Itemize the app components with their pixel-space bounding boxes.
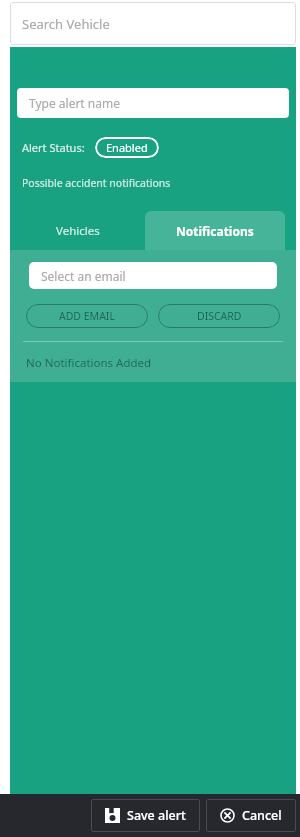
staticText: Select an email xyxy=(41,268,126,284)
button[interactable]: Enabled xyxy=(95,137,159,158)
button[interactable]: Select an email xyxy=(29,262,277,289)
button[interactable]: ADD EMAIL xyxy=(26,304,148,328)
staticText: Enabled xyxy=(106,140,148,155)
button[interactable]: Cancel xyxy=(206,799,296,832)
button[interactable]: Search Vehicle xyxy=(10,2,296,45)
button[interactable]: DISCARD xyxy=(158,304,280,328)
other: Cancel xyxy=(220,808,235,823)
staticText: Cancel xyxy=(242,807,282,824)
staticText: Save alert xyxy=(127,807,186,824)
button[interactable]: Vehicles xyxy=(10,211,145,250)
button[interactable]: Type alert name xyxy=(17,88,289,118)
staticText: No Notifications Added xyxy=(26,355,152,371)
staticText: Alert Status: xyxy=(22,140,85,155)
other: Save xyxy=(105,808,120,823)
staticText: ADD EMAIL xyxy=(59,309,115,323)
staticText: DISCARD xyxy=(197,309,242,323)
staticText: Vehicles xyxy=(56,223,100,239)
button[interactable]: Notifications xyxy=(145,211,285,250)
staticText: Possible accident notifications xyxy=(22,176,171,190)
staticText: Notifications xyxy=(176,223,254,239)
button[interactable]: Save xyxy=(91,799,200,832)
staticText: Type alert name xyxy=(29,95,120,111)
staticText: Search Vehicle xyxy=(22,15,110,33)
